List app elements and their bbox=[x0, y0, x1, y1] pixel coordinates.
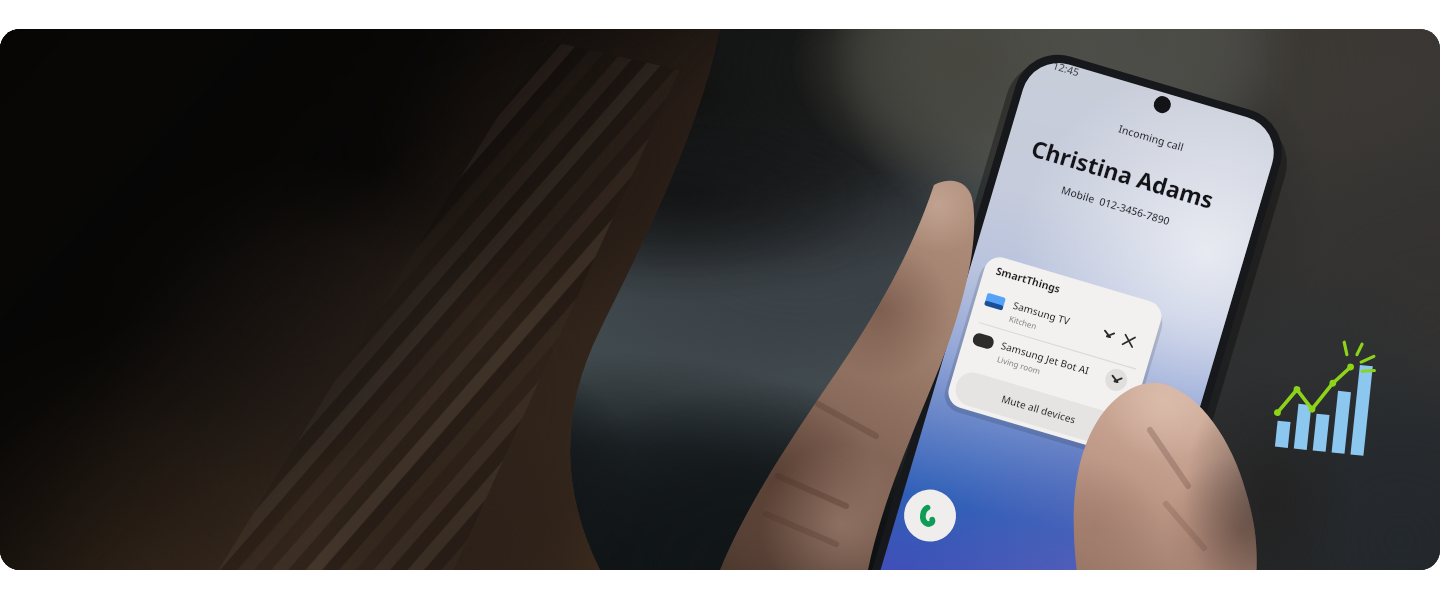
other: Incoming call from Christina Adams on a … bbox=[0, 0, 1440, 600]
